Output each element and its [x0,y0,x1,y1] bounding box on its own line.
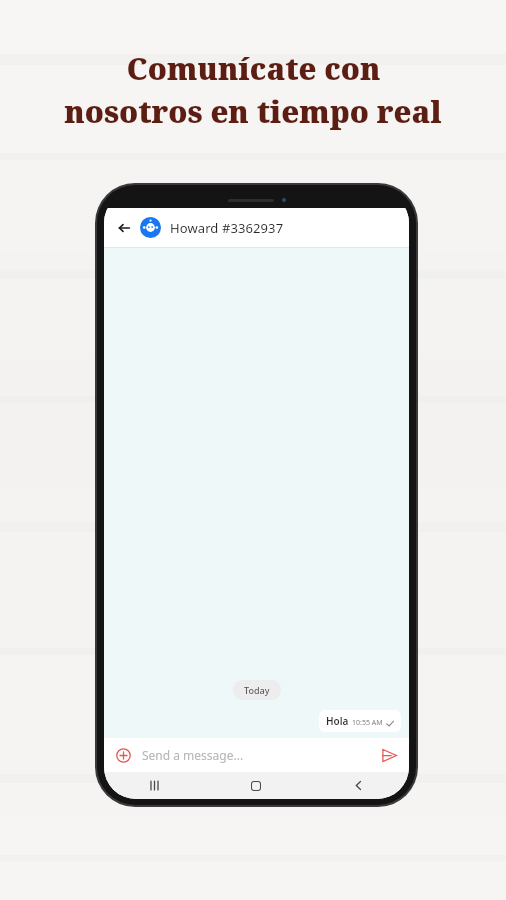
staticText: Comunícate con [126,48,381,89]
button[interactable]: Send a message... [142,738,371,772]
staticText: Send a message... [142,747,244,763]
button[interactable]: Home [205,772,307,799]
staticText: Hola [326,714,349,728]
button[interactable]: Contact avatar [140,217,161,238]
staticText: 10:55 AM [352,718,383,728]
button[interactable]: Send [377,743,401,767]
button[interactable]: Hola [319,710,401,732]
button[interactable]: Back [307,772,409,799]
button[interactable]: Recent apps [104,772,205,799]
button[interactable]: Back [114,218,134,238]
staticText: nosotros en tiempo real [64,91,442,132]
staticText: Today [244,684,270,696]
staticText: Howard #3362937 [170,219,284,237]
button[interactable]: Add attachment [112,744,134,766]
